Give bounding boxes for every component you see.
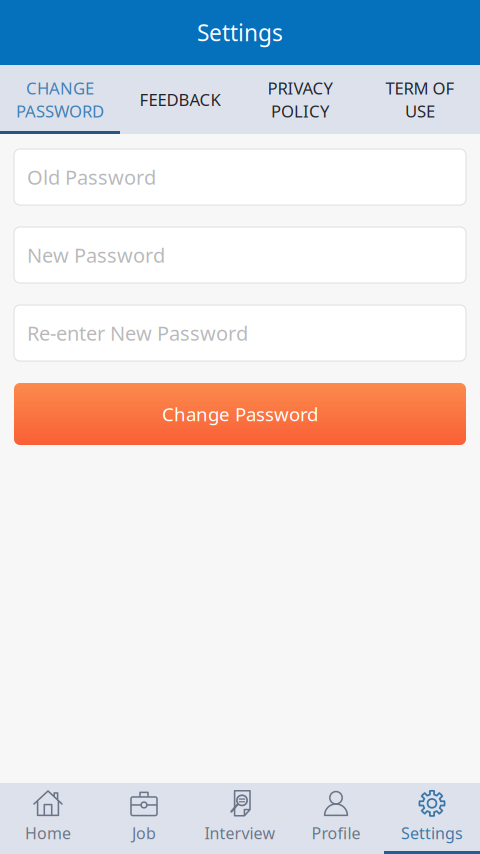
button[interactable]: FEEDBACK bbox=[120, 65, 240, 134]
staticText: POLICY bbox=[271, 100, 329, 122]
button[interactable]: Home bbox=[0, 783, 96, 854]
staticText: TERM OF bbox=[385, 77, 454, 99]
staticText: Job bbox=[132, 822, 156, 844]
staticText: Settings bbox=[401, 822, 463, 844]
button[interactable]: Profile bbox=[288, 783, 384, 854]
staticText: Profile bbox=[311, 822, 360, 844]
button[interactable]: Change Password bbox=[14, 383, 466, 445]
staticText: FEEDBACK bbox=[139, 88, 220, 110]
button[interactable]: Settings bbox=[384, 783, 480, 854]
staticText: USE bbox=[405, 100, 435, 122]
button[interactable]: TERM OF bbox=[360, 65, 480, 134]
button[interactable]: PRIVACY bbox=[240, 65, 360, 134]
staticText: New Password bbox=[27, 242, 165, 268]
button[interactable]: Interview bbox=[192, 783, 288, 854]
staticText: PRIVACY bbox=[267, 77, 332, 99]
staticText: Change Password bbox=[162, 402, 318, 426]
button[interactable]: CHANGE bbox=[0, 65, 120, 134]
staticText: Re-enter New Password bbox=[27, 320, 248, 346]
staticText: Settings bbox=[197, 17, 283, 47]
staticText: Home bbox=[25, 822, 71, 844]
staticText: PASSWORD bbox=[16, 100, 104, 122]
button[interactable]: Job bbox=[96, 783, 192, 854]
staticText: CHANGE bbox=[26, 77, 94, 99]
staticText: Old Password bbox=[27, 164, 156, 190]
staticText: Interview bbox=[204, 822, 275, 844]
